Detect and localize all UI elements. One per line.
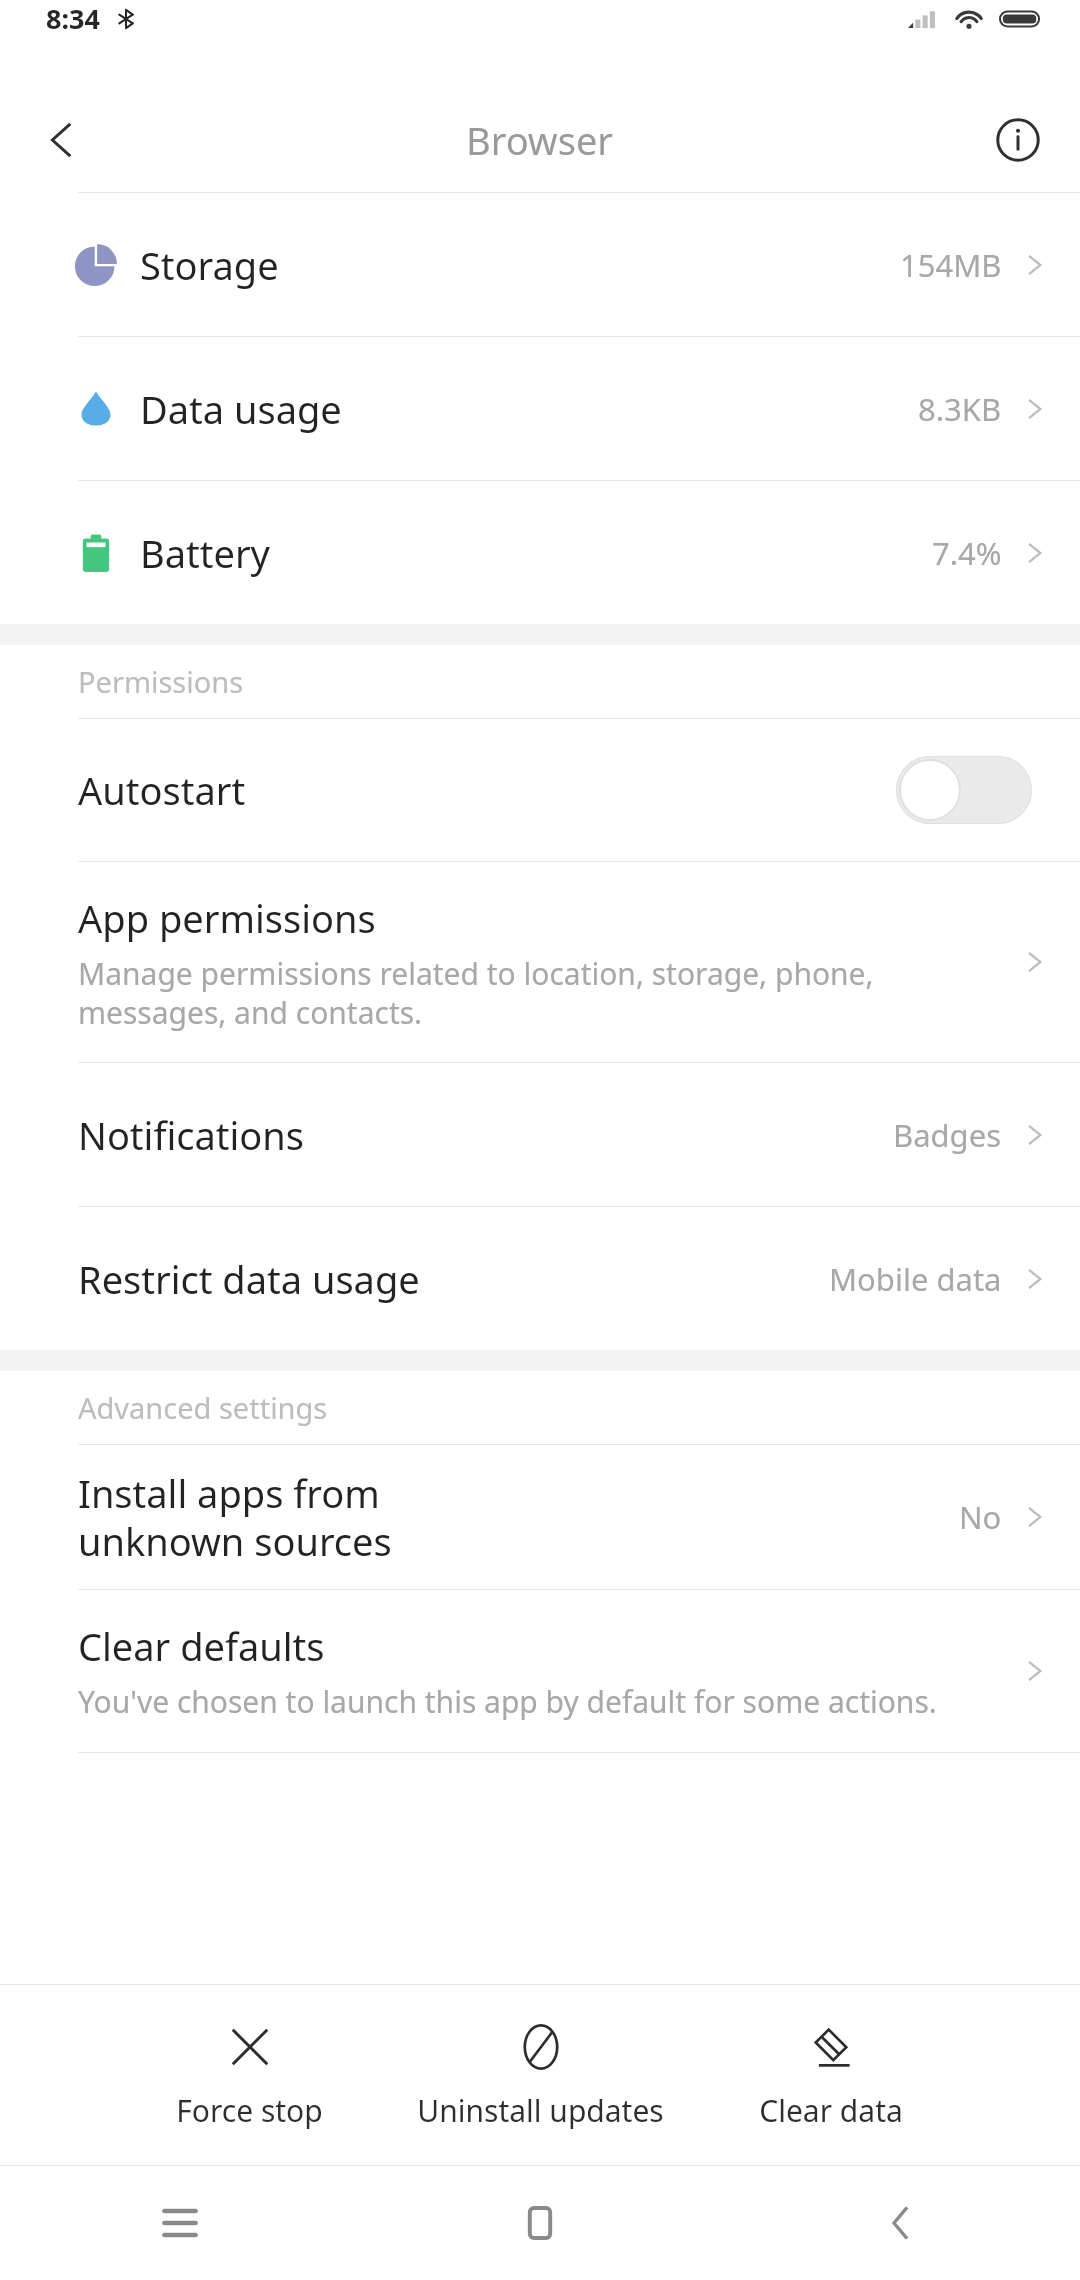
staticText: No <box>959 1496 1002 1538</box>
button[interactable]: Clear data <box>702 2012 960 2139</box>
button[interactable]: Autostart <box>0 719 1080 861</box>
staticText: Badges <box>893 1114 1002 1156</box>
staticText: 7.4% <box>932 532 1002 574</box>
button[interactable]: Uninstall updates <box>379 2012 702 2139</box>
button[interactable]: Back <box>720 2166 1080 2280</box>
button[interactable]: Battery <box>0 481 1080 624</box>
staticText: Storage <box>140 239 279 291</box>
staticText: Mobile data <box>829 1258 1002 1300</box>
staticText: Notifications <box>78 1109 305 1161</box>
staticText: Browser <box>466 114 614 166</box>
staticText: Install apps from unknown sources <box>78 1467 392 1567</box>
staticText: 8.3KB <box>918 388 1002 430</box>
staticText: 154MB <box>900 244 1002 286</box>
button[interactable]: App permissions <box>0 862 1080 1062</box>
button[interactable]: Install apps from unknown sources <box>0 1445 1080 1589</box>
staticText: You've chosen to launch this app by defa… <box>78 1681 937 1722</box>
staticText: Data usage <box>140 383 342 435</box>
staticText: Manage permissions related to location, … <box>78 953 874 1032</box>
button[interactable]: Recent apps <box>0 2166 360 2280</box>
button[interactable]: Home <box>360 2166 720 2280</box>
button[interactable]: Clear defaults <box>0 1590 1080 1752</box>
button[interactable]: Restrict data usage <box>0 1207 1080 1350</box>
button[interactable]: Back <box>24 102 100 178</box>
staticText: Autostart <box>78 764 246 816</box>
staticText: Advanced settings <box>78 1388 328 1427</box>
button[interactable]: Notifications <box>0 1063 1080 1206</box>
staticText: Clear data <box>759 2090 903 2131</box>
staticText: App permissions <box>78 892 376 944</box>
staticText: Battery <box>140 527 270 579</box>
staticText: Uninstall updates <box>417 2090 664 2131</box>
staticText: Permissions <box>78 662 244 701</box>
button[interactable]: Data usage <box>0 337 1080 480</box>
staticText: Force stop <box>176 2090 323 2131</box>
button[interactable]: Force stop <box>120 2012 379 2139</box>
staticText: Restrict data usage <box>78 1253 420 1305</box>
button[interactable]: App info <box>980 102 1056 178</box>
staticText: 8:34 <box>46 0 100 37</box>
button[interactable]: Storage <box>0 193 1080 336</box>
staticText: Clear defaults <box>78 1620 325 1672</box>
